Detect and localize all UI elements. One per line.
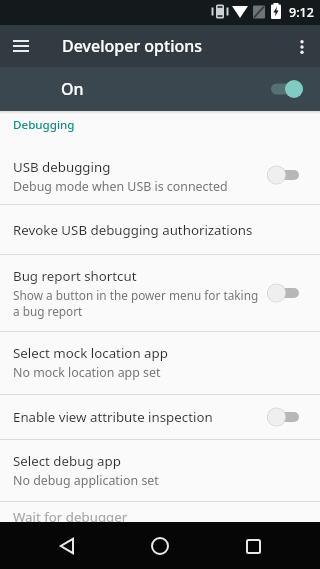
staticText: On: [61, 78, 84, 100]
staticText: a bug report: [13, 303, 83, 319]
button[interactable]: Enable view attribute inspection: [0, 395, 320, 439]
button[interactable]: Wait for debugger: [0, 502, 320, 522]
staticText: Bug report shortcut: [13, 267, 137, 285]
staticText: Debug mode when USB is connected: [13, 178, 228, 195]
staticText: Show a button in the power menu for taki…: [13, 287, 259, 303]
staticText: Wait for debugger: [13, 508, 128, 522]
staticText: Enable view attribute inspection: [13, 408, 213, 426]
button[interactable]: USB debugging: [0, 146, 320, 204]
staticText: 9:12: [289, 4, 314, 21]
staticText: Select debug app: [13, 452, 121, 470]
button[interactable]: [140, 526, 180, 566]
staticText: Debugging: [13, 117, 75, 133]
button[interactable]: Select debug app: [0, 440, 320, 501]
staticText: Revoke USB debugging authorizations: [13, 221, 253, 239]
staticText: USB debugging: [13, 158, 111, 176]
button[interactable]: [283, 28, 320, 65]
button[interactable]: [47, 526, 87, 566]
staticText: No mock location app set: [13, 364, 161, 381]
button[interactable]: On: [0, 67, 320, 111]
button[interactable]: [233, 526, 273, 566]
button[interactable]: Bug report shortcut: [0, 255, 320, 331]
button[interactable]: Revoke USB debugging authorizations: [0, 205, 320, 254]
button[interactable]: Select mock location app: [0, 332, 320, 394]
button[interactable]: [0, 25, 42, 67]
staticText: Developer options: [62, 35, 203, 57]
staticText: Select mock location app: [13, 344, 168, 362]
staticText: No debug application set: [13, 472, 159, 489]
